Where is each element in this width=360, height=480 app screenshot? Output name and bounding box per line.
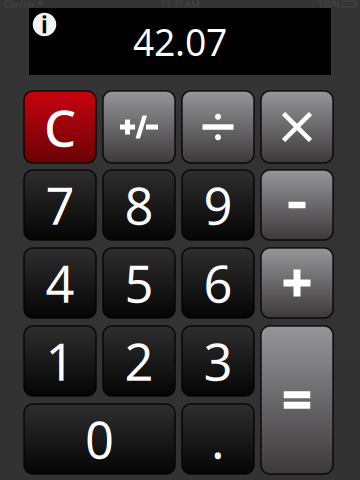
staticText: 8 <box>124 171 153 239</box>
staticText: 1 <box>45 327 74 395</box>
staticText: 100% <box>317 0 340 10</box>
button[interactable]: Equals <box>261 326 333 474</box>
button[interactable]: Plus or minus <box>103 91 175 163</box>
button[interactable]: 5 <box>103 248 175 318</box>
button[interactable]: 7 <box>24 170 96 240</box>
button[interactable]: Multiply <box>261 91 333 163</box>
staticText: 7 <box>45 171 74 239</box>
button[interactable]: 1 <box>24 326 96 396</box>
staticText: 5 <box>124 249 153 317</box>
button[interactable]: 2 <box>103 326 175 396</box>
button[interactable]: 6 <box>182 248 254 318</box>
staticText: i <box>41 9 48 39</box>
staticText: 42.07 <box>133 17 227 66</box>
button[interactable]: 9 <box>182 170 254 240</box>
button[interactable]: Add <box>261 248 333 318</box>
button[interactable]: Subtract <box>261 170 333 240</box>
staticText: 3 <box>203 327 232 395</box>
staticText: 6 <box>203 249 232 317</box>
button[interactable]: Divide <box>182 91 254 163</box>
button[interactable]: 8 <box>103 170 175 240</box>
button[interactable]: 3 <box>182 326 254 396</box>
button[interactable]: . <box>182 404 254 474</box>
button[interactable]: 0 <box>24 404 175 474</box>
staticText: 11:31 AM <box>160 0 200 10</box>
button[interactable]: 4 <box>24 248 96 318</box>
staticText: C <box>44 93 76 161</box>
staticText: 4 <box>45 249 74 317</box>
staticText: . <box>211 405 225 473</box>
button[interactable]: Info <box>33 13 56 36</box>
staticText: 0 <box>85 405 114 473</box>
staticText: 9 <box>203 171 232 239</box>
staticText: Carrier <box>4 0 35 10</box>
staticText: 2 <box>124 327 153 395</box>
button[interactable]: C <box>24 91 96 163</box>
